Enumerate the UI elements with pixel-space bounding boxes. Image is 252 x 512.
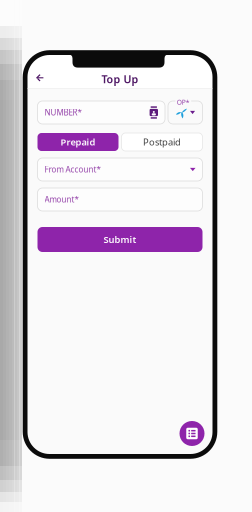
button[interactable]: Postpaid	[121, 133, 202, 151]
staticText: NUMBER*	[44, 107, 81, 118]
button[interactable]: From Account*	[37, 158, 202, 181]
button[interactable]: Amount*	[37, 188, 202, 211]
staticText: Top Up	[101, 72, 138, 86]
button[interactable]: Prepaid	[37, 133, 118, 151]
staticText: OP*	[177, 98, 190, 107]
staticText: Prepaid	[60, 136, 95, 148]
staticText: Amount*	[44, 194, 78, 205]
staticText: From Account*	[44, 164, 100, 175]
button[interactable]: Select operator	[168, 101, 202, 124]
staticText: Submit	[103, 233, 136, 246]
staticText: Postpaid	[143, 136, 181, 148]
button[interactable]: Back	[27, 70, 48, 88]
button[interactable]: Submit	[37, 227, 202, 252]
button[interactable]: Pick from contacts	[150, 106, 158, 119]
button[interactable]: Recent transactions	[179, 421, 204, 446]
